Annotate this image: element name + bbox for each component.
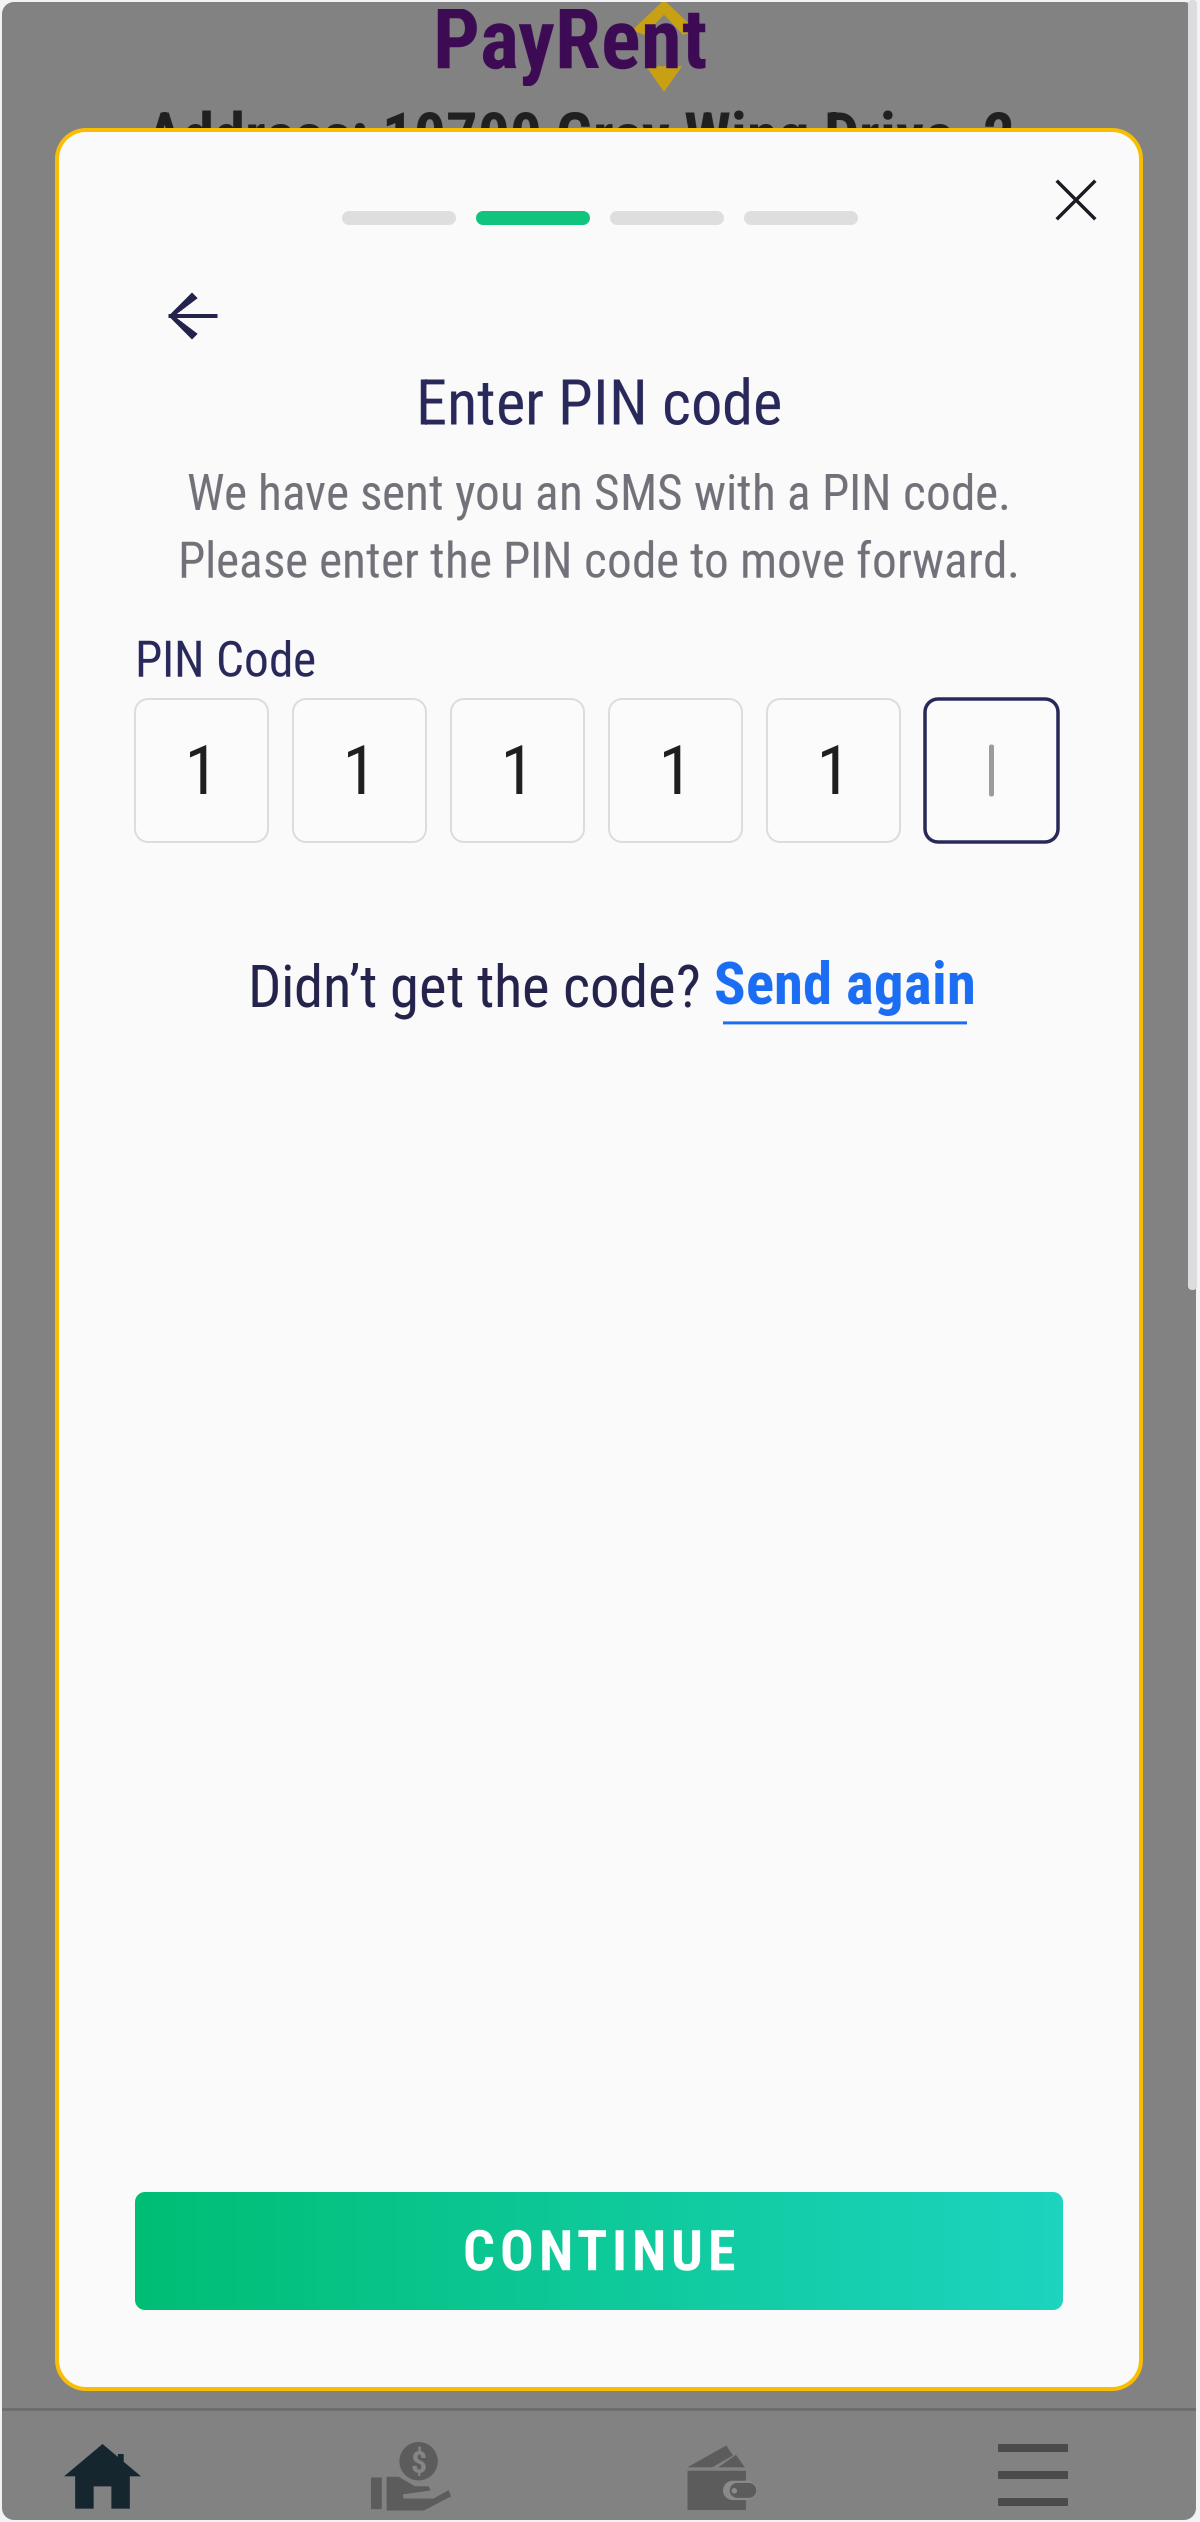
- button[interactable]: Menu: [902, 2444, 1199, 2510]
- staticText: 1: [184, 730, 218, 811]
- staticText: We have sent you an SMS with a PIN code.: [187, 464, 1011, 522]
- staticText: PIN Code: [135, 631, 316, 689]
- staticText: 1: [816, 730, 850, 811]
- button[interactable]: Payments: [308, 2444, 605, 2510]
- staticText: CONTINUE: [463, 2218, 735, 2284]
- staticText: 1: [342, 730, 376, 811]
- button[interactable]: Didn’t get the code?: [70, 950, 1154, 1024]
- button[interactable]: Wallet: [605, 2444, 902, 2510]
- button[interactable]: Home: [0, 2444, 308, 2510]
- staticText: Please enter the PIN code to move forwar…: [178, 532, 1020, 590]
- staticText: Enter PIN code: [416, 366, 782, 440]
- staticText: Address: 10700 Gray Wing Drive, 2: [146, 99, 1015, 173]
- staticText: 1: [500, 730, 534, 811]
- button[interactable]: Close: [1042, 164, 1110, 236]
- staticText: Send again: [714, 950, 976, 1018]
- button[interactable]: CONTINUE: [135, 2192, 1063, 2310]
- button[interactable]: Back: [143, 266, 243, 366]
- staticText: Didn’t get the code?: [248, 953, 714, 1021]
- staticText: PayRent: [433, 0, 707, 88]
- staticText: 1: [658, 730, 692, 811]
- staticText: $: [411, 2443, 427, 2481]
